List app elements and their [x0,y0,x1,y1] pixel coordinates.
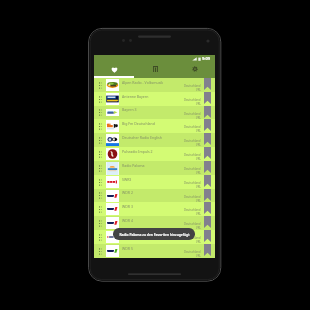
button[interactable]: Bookmark [204,106,211,119]
button[interactable]: Bookmark [204,244,211,258]
button[interactable]: WDR 4 [94,216,215,230]
button[interactable]: Antenne Bayern [94,92,215,106]
staticText: Bayern 3 [122,107,184,112]
button[interactable]: Settings [175,62,215,76]
button[interactable]: Deutscher Radio English [94,133,215,147]
button[interactable]: Bookmark [204,175,211,189]
staticText: VRL [196,199,201,203]
button[interactable]: SWR 1 [94,230,215,244]
staticText: Deutschland [184,167,201,171]
button[interactable]: Alpen Radio - Volksmusik [94,78,215,92]
staticText: VRL [196,212,201,216]
staticText: Deutschland [184,84,201,88]
staticText: Deutschland [184,98,201,102]
staticText: Deutschland [184,153,201,157]
button[interactable]: Bookmark [204,189,211,202]
staticText: WDR 2 [122,190,184,195]
staticText: Alpen Radio - Volksmusik [122,80,184,85]
button[interactable]: WDR 5 [94,244,215,258]
staticText: Deutschland [184,195,201,199]
staticText: Antenne Bayern [122,94,184,99]
staticText: Deutschland [184,112,201,116]
staticText: WDR 3 [122,204,184,209]
staticText: VRL [196,226,201,230]
staticText: WDR 5 [122,246,184,251]
button[interactable]: Radio Paloma zu den Favoriten hinzugefüg… [113,228,195,240]
staticText: Deutschland [184,139,201,143]
staticText: VRL [196,116,201,120]
button[interactable]: Favorites [94,62,135,76]
button[interactable]: Pulsradio Impuls 2 [94,147,215,161]
button[interactable]: Big Fm Deutschland [94,119,215,133]
staticText: Deutschland [184,236,201,240]
staticText: VRL [196,254,201,258]
button[interactable]: Stations [135,62,175,76]
staticText: Big Fm Deutschland [122,121,184,126]
button[interactable]: Bookmark [204,216,211,230]
button[interactable]: Radio Paloma [94,161,215,175]
staticText: VRL [196,143,201,147]
button[interactable]: WDR 2 [94,189,215,202]
staticText: VRL [196,88,201,92]
staticText: SWR3 [122,177,184,182]
staticText: Deutschland [184,125,201,129]
staticText: VRL [196,157,201,161]
staticText: Deutschland [184,222,201,226]
button[interactable]: Bookmark [204,78,211,92]
button[interactable]: Bookmark [204,133,211,147]
staticText: VRL [196,129,201,133]
staticText: VRL [196,102,201,106]
staticText: Pulsradio Impuls 2 [122,149,184,154]
staticText: Radio Paloma zu den Favoriten hinzugefüg… [119,232,190,236]
button[interactable]: Bookmark [204,147,211,161]
button[interactable]: Bayern 3 [94,106,215,119]
staticText: Deutscher Radio English [122,135,184,140]
staticText: WDR 4 [122,218,184,223]
button[interactable]: SWR3 [94,175,215,189]
button[interactable]: WDR 3 [94,202,215,216]
button[interactable]: Bookmark [204,230,211,244]
button[interactable]: Bookmark [204,202,211,216]
button[interactable]: Bookmark [204,161,211,175]
staticText: VRL [196,240,201,244]
staticText: Radio Paloma [122,163,184,168]
button[interactable]: Bookmark [204,119,211,133]
staticText: SWR 1 [122,232,184,237]
staticText: VRL [196,185,201,189]
staticText: 9:09 [202,56,211,62]
staticText: Deutschland [184,250,201,254]
staticText: Deutschland [184,208,201,212]
staticText: VRL [196,171,201,175]
button[interactable]: Bookmark [204,92,211,106]
staticText: Deutschland [184,181,201,185]
